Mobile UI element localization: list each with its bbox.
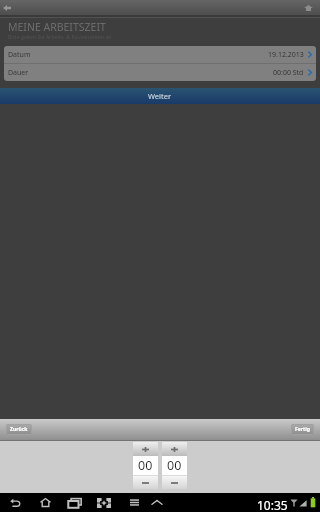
- staticText: Fertig: [295, 426, 310, 433]
- button[interactable]: Home: [300, 0, 320, 15]
- staticText: 10:35: [257, 497, 288, 512]
- staticText: Dauer: [8, 68, 29, 78]
- staticText: 00:00 Std: [273, 68, 304, 78]
- staticText: Datum: [8, 50, 31, 60]
- button[interactable]: Home: [33, 493, 57, 512]
- button[interactable]: Decrement: [162, 476, 187, 489]
- button[interactable]: Increment: [133, 442, 158, 456]
- button[interactable]: Back: [3, 493, 27, 512]
- staticText: 00: [138, 457, 153, 474]
- button[interactable]: Decrement: [133, 476, 158, 489]
- staticText: 19.12.2013: [268, 50, 304, 60]
- button[interactable]: Zurück: [6, 424, 32, 435]
- staticText: Bitte geben Sie Arbeits- & Pausenzeiten …: [8, 33, 113, 40]
- button[interactable]: Expand: [145, 493, 169, 512]
- staticText: MEINE ARBEITSZEIT: [8, 20, 106, 34]
- button[interactable]: Fertig: [291, 424, 314, 435]
- staticText: 00: [167, 457, 182, 474]
- button[interactable]: Weiter: [0, 88, 320, 104]
- button[interactable]: Screenshot: [92, 493, 116, 512]
- button[interactable]: Increment: [162, 442, 187, 456]
- button[interactable]: Back: [0, 0, 20, 15]
- button[interactable]: Recent apps: [63, 493, 87, 512]
- button[interactable]: Datum: [4, 46, 316, 63]
- staticText: Zurück: [10, 426, 28, 433]
- staticText: Weiter: [148, 91, 172, 101]
- button[interactable]: Menu: [122, 493, 146, 512]
- button[interactable]: Dauer: [4, 64, 316, 81]
